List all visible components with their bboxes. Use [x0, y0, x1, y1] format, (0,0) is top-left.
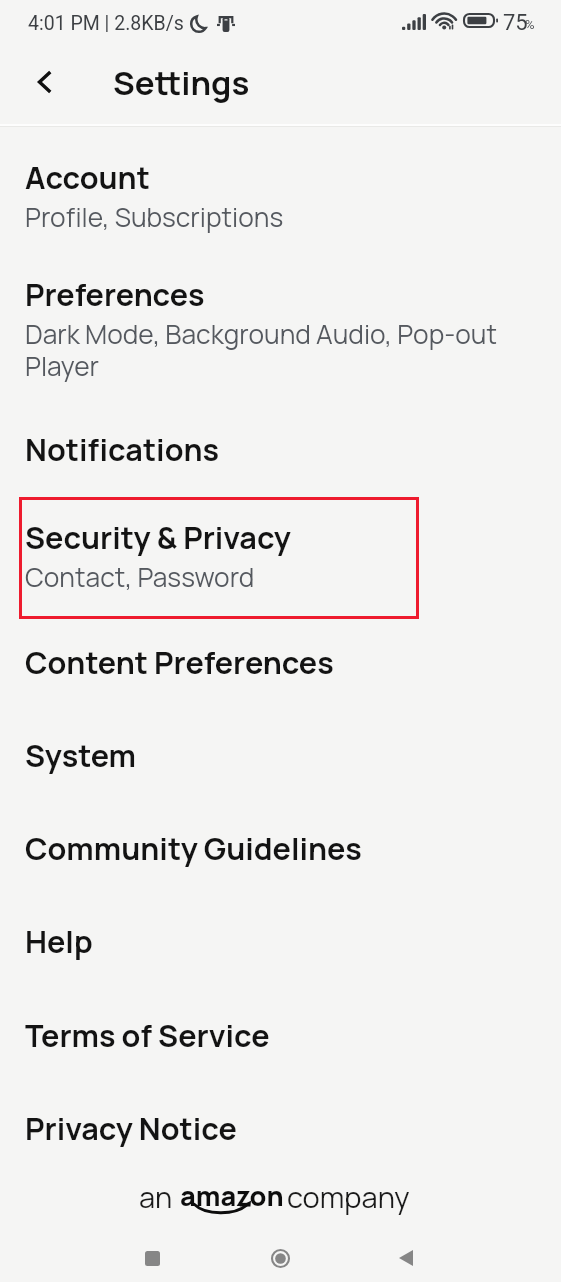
button[interactable]: Notifications	[0, 420, 561, 477]
staticText: Security & Privacy	[25, 516, 291, 558]
button[interactable]: Help	[0, 912, 561, 969]
staticText: amazon	[180, 1177, 284, 1214]
button[interactable]: Back	[26, 63, 64, 101]
staticText: %	[525, 17, 535, 32]
staticText: Contact, Password	[25, 562, 255, 594]
button[interactable]: Account	[0, 148, 561, 241]
staticText: Community Guidelines	[25, 827, 362, 869]
staticText: Help	[25, 920, 93, 962]
button[interactable]: Preferences	[0, 265, 561, 390]
staticText: Settings	[113, 60, 250, 105]
button[interactable]: Terms of Service	[0, 1006, 561, 1063]
button[interactable]: Community Guidelines	[0, 819, 561, 876]
staticText: Content Preferences	[25, 641, 334, 683]
staticText: Notifications	[25, 428, 220, 470]
button[interactable]: Privacy Notice	[0, 1099, 561, 1156]
staticText: Profile, Subscriptions	[25, 202, 284, 234]
button[interactable]: Back	[386, 1238, 426, 1278]
staticText: Account	[25, 156, 150, 198]
button[interactable]: Content Preferences	[0, 633, 561, 690]
staticText: 4:01 PM | 2.8KB/s	[28, 12, 184, 35]
button[interactable]: System	[0, 726, 561, 783]
staticText: company	[287, 1177, 410, 1217]
staticText: an	[139, 1177, 173, 1217]
staticText: 75	[503, 10, 528, 36]
staticText: Privacy Notice	[25, 1107, 237, 1149]
staticText: System	[25, 734, 137, 776]
button[interactable]: Security & Privacy	[0, 508, 561, 601]
button[interactable]: Recent apps	[132, 1238, 172, 1278]
staticText: Dark Mode, Background Audio, Pop-out Pla…	[25, 319, 536, 383]
staticText: Preferences	[25, 273, 205, 315]
staticText: Terms of Service	[25, 1014, 270, 1056]
button[interactable]: Home	[260, 1238, 300, 1278]
